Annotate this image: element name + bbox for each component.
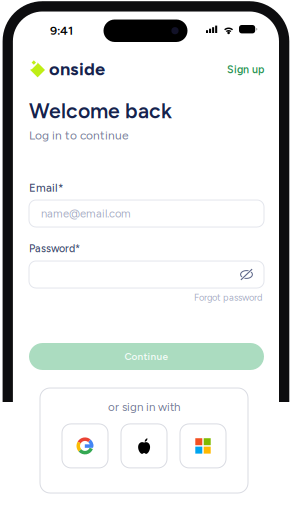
staticText: onside bbox=[49, 58, 105, 80]
staticText: Sign up bbox=[227, 63, 264, 76]
staticText: name@email.com bbox=[41, 207, 131, 220]
button[interactable]: Sign in with Apple bbox=[121, 424, 167, 468]
staticText: Email* bbox=[29, 181, 63, 195]
staticText: Forgot password bbox=[194, 292, 262, 303]
button[interactable]: Continue bbox=[29, 343, 264, 370]
staticText: or sign in with bbox=[108, 400, 180, 414]
button[interactable]: Sign in with Google bbox=[62, 424, 108, 468]
button[interactable]: Sign in with Microsoft bbox=[180, 424, 226, 468]
staticText: Password* bbox=[29, 242, 80, 255]
button[interactable]: Forgot password bbox=[194, 292, 262, 303]
button[interactable]: Show password bbox=[240, 268, 253, 281]
staticText: Log in to continue bbox=[29, 128, 129, 142]
button[interactable]: Sign up bbox=[227, 63, 264, 76]
staticText: Welcome back bbox=[29, 98, 172, 123]
staticText: Continue bbox=[124, 350, 168, 362]
staticText: 9:41 bbox=[50, 23, 73, 38]
